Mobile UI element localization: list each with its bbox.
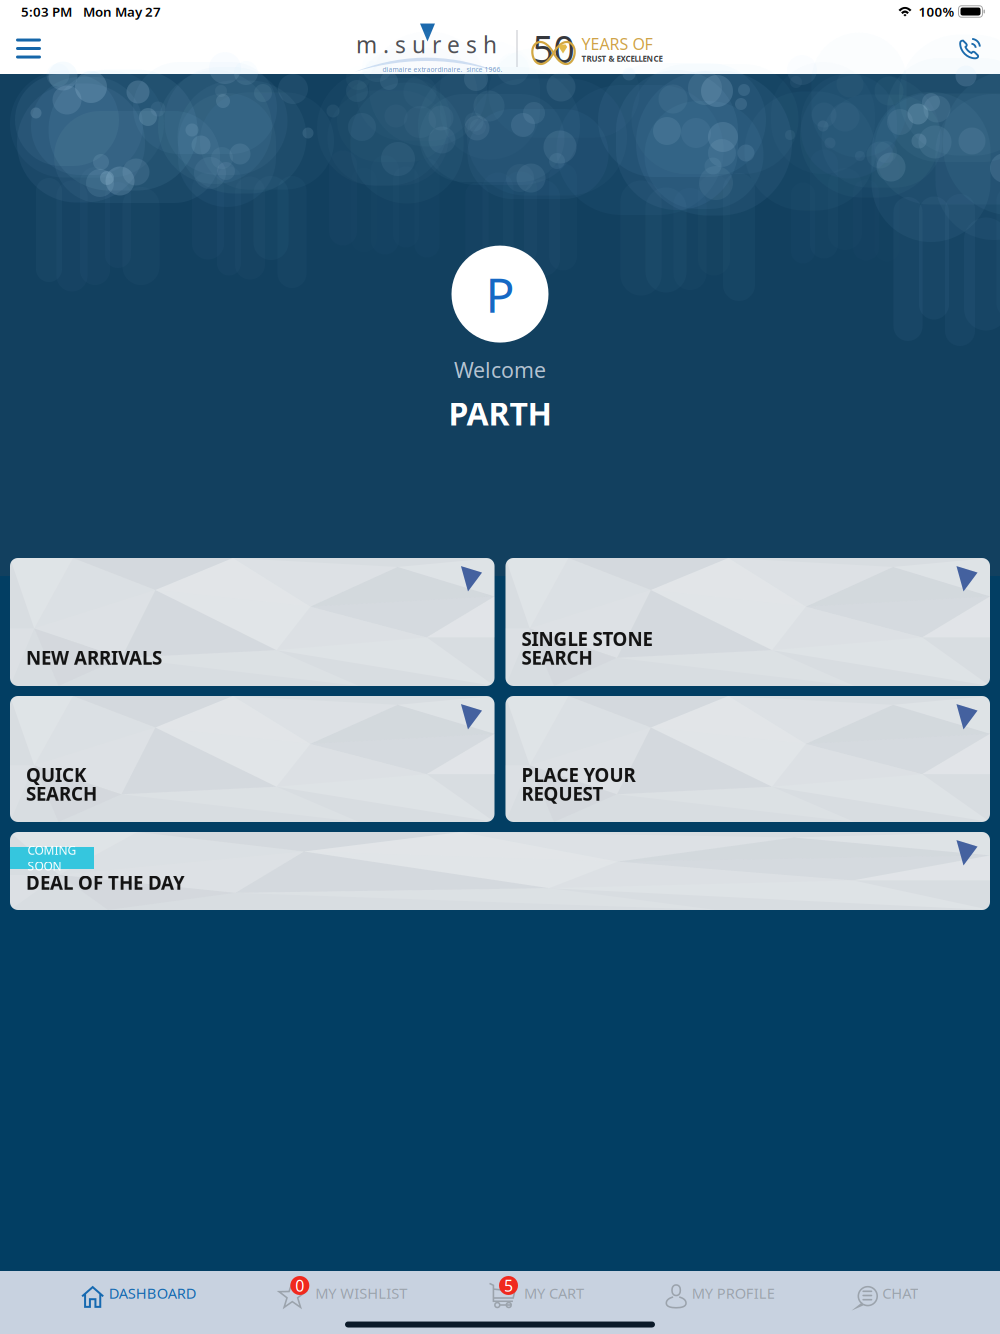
staticText: diamaire extraordinaire. since 1966. [382,65,502,74]
button[interactable]: DASHBOARD [82,1271,197,1315]
staticText: SEARCH [26,781,97,806]
button[interactable]: PLACE YOUR [505,696,990,822]
button[interactable]: QUICK [10,696,494,822]
staticText: P [485,262,514,326]
button[interactable]: CHAT [856,1271,918,1315]
staticText: 100% [918,3,954,20]
staticText: TRUST & EXCELLENCE [581,53,662,64]
button[interactable]: Menu [0,26,59,71]
staticText: NEW ARRIVALS [26,645,162,670]
staticText: QUICK [26,762,86,787]
staticText: MY PROFILE [692,1283,775,1303]
staticText: DEAL OF THE DAY [26,870,185,895]
staticText: PARTH [448,392,551,434]
staticText: m . s u r e s h [356,29,497,59]
button[interactable]: 0 [278,1271,407,1315]
button[interactable]: SINGLE STONE [505,558,990,686]
button[interactable]: MY PROFILE [666,1271,775,1315]
staticText: COMING SOON [27,842,76,874]
staticText: Welcome [454,356,546,384]
staticText: PLACE YOUR [521,762,635,787]
button[interactable]: NEW ARRIVALS [10,558,494,686]
staticText: Mon May 27 [83,3,161,20]
staticText: SEARCH [521,645,592,670]
staticText: 0 [295,1275,304,1296]
button[interactable]: Call us [942,26,1000,70]
staticText: REQUEST [521,781,603,806]
staticText: YEARS OF [581,33,652,54]
staticText: DASHBOARD [109,1283,197,1303]
staticText: 5 [504,1275,513,1296]
button[interactable]: 5 [489,1271,584,1315]
staticText: 50 [532,24,574,73]
staticText: CHAT [882,1283,918,1303]
staticText: 5:03 PM [21,3,72,20]
staticText: MY WISHLIST [315,1283,407,1303]
staticText: MY CART [524,1283,584,1303]
button[interactable]: COMING SOON [10,832,990,910]
staticText: SINGLE STONE [521,626,652,651]
